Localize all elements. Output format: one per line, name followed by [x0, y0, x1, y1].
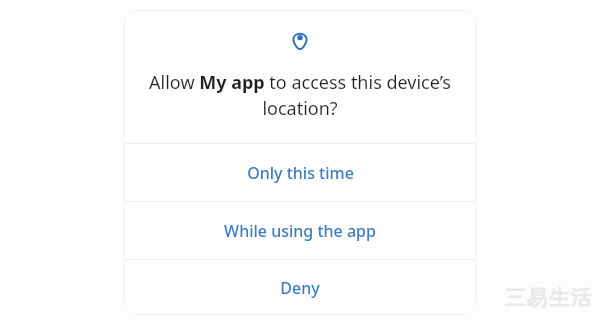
other: Location [292, 30, 308, 50]
staticText: Deny [280, 277, 320, 299]
button[interactable]: While using the app [124, 202, 476, 259]
button[interactable]: Deny [124, 260, 476, 315]
staticText: Allow My app to access this device’s loc… [146, 70, 454, 120]
staticText: While using the app [224, 220, 376, 242]
staticText: Only this time [247, 162, 354, 184]
button[interactable]: Only this time [124, 144, 476, 201]
staticText: 三易生活 [504, 285, 592, 311]
